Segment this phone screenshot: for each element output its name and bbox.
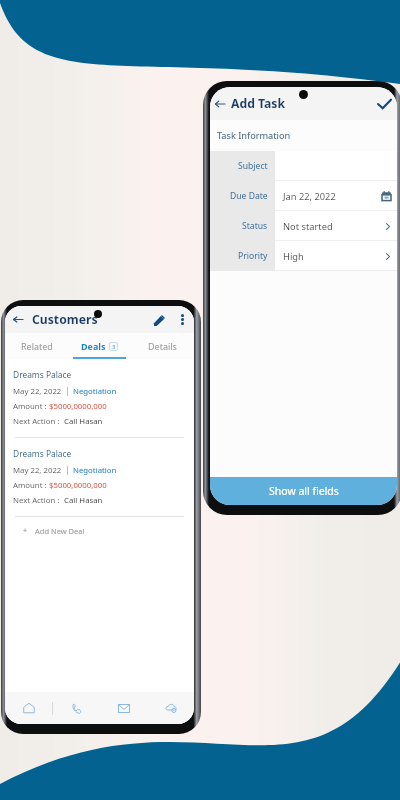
button[interactable]: Back [211, 95, 229, 113]
button[interactable]: + [5, 517, 194, 544]
staticText: Status [242, 220, 268, 232]
button[interactable]: Due Date [210, 181, 397, 211]
staticText: Customers [32, 311, 98, 328]
button[interactable]: Deals [68, 333, 131, 359]
button[interactable]: Save [375, 95, 393, 113]
button[interactable]: Cloud [147, 692, 194, 724]
staticText: Task Information [217, 129, 291, 142]
staticText: $5000,0000,000 [49, 401, 107, 412]
staticText: Amount : [13, 480, 49, 491]
staticText: Priority [238, 250, 268, 262]
staticText: Next Action : [13, 416, 64, 427]
button[interactable]: Subject [210, 151, 397, 181]
staticText: Subject [238, 160, 268, 172]
staticText: Add Task [231, 95, 286, 112]
staticText: Related [21, 340, 53, 352]
button[interactable]: More options [176, 313, 189, 326]
staticText: Dreams Palace [13, 448, 72, 459]
staticText: May 22, 2022 [13, 465, 62, 476]
staticText: Not started [283, 220, 333, 233]
staticText: Negotiation [73, 465, 117, 476]
staticText: Next Action : [13, 495, 64, 506]
button[interactable]: Dreams Palace [5, 438, 194, 516]
button[interactable]: Home [5, 692, 52, 724]
button[interactable]: Priority [210, 241, 397, 271]
staticText: Jan 22, 2022 [283, 190, 336, 203]
staticText: Call Hasan [64, 495, 103, 506]
button[interactable]: Dreams Palace [5, 359, 194, 437]
staticText: $5000,0000,000 [49, 480, 107, 491]
button[interactable]: Mail [100, 692, 147, 724]
staticText: 3 [112, 343, 116, 351]
staticText: Add New Deal [35, 526, 85, 536]
staticText: Due Date [230, 190, 268, 202]
staticText: Show all fields [269, 484, 339, 498]
staticText: May 22, 2022 [13, 386, 62, 397]
staticText: Dreams Palace [13, 369, 72, 380]
button[interactable]: Related [5, 333, 68, 359]
button[interactable]: Calls [53, 692, 100, 724]
staticText: Call Hasan [64, 416, 103, 427]
button[interactable]: Edit [150, 311, 168, 329]
button[interactable]: Details [131, 333, 194, 359]
button[interactable]: Status [210, 211, 397, 241]
staticText: + [23, 526, 28, 536]
staticText: High [283, 250, 304, 263]
staticText: Details [148, 340, 177, 352]
button[interactable]: Back [10, 312, 25, 327]
staticText: Negotiation [73, 386, 117, 397]
button[interactable]: Show all fields [210, 477, 397, 505]
staticText: Amount : [13, 401, 49, 412]
staticText: Deals [81, 340, 106, 352]
